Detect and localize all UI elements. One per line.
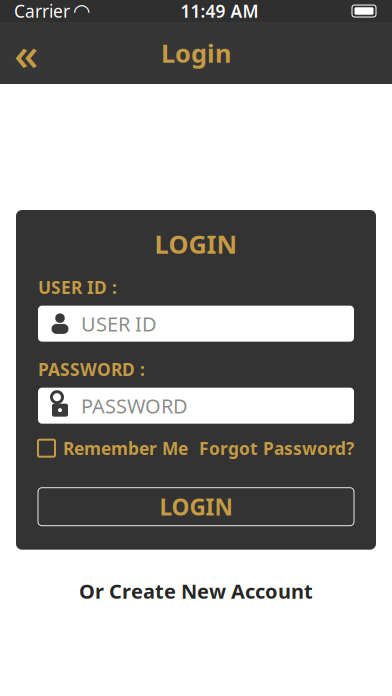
staticText: USER ID : [38,276,117,299]
staticText: 11:49 AM [180,0,258,22]
staticText: PASSWORD [81,392,188,419]
button[interactable]: Or Create New Account [69,572,323,610]
button[interactable]: Forgot Password? [199,437,354,460]
staticText: PASSWORD : [38,358,145,381]
staticText: LOGIN [159,492,232,522]
staticText: Remember Me [63,437,188,460]
staticText: USER ID [81,310,157,337]
button[interactable]: LOGIN [38,488,354,526]
staticText: Login [161,36,231,70]
button[interactable]: PASSWORD [38,388,354,424]
button[interactable]: Remember Me [38,437,188,460]
staticText: LOGIN [154,227,237,261]
staticText: Carrier [14,0,70,22]
button[interactable]: USER ID [38,306,354,342]
button[interactable]: Back [0,31,52,75]
staticText: ◠ [74,0,89,22]
staticText: Forgot Password? [199,437,354,460]
staticText: « [14,23,38,83]
staticText: Or Create New Account [79,578,313,604]
